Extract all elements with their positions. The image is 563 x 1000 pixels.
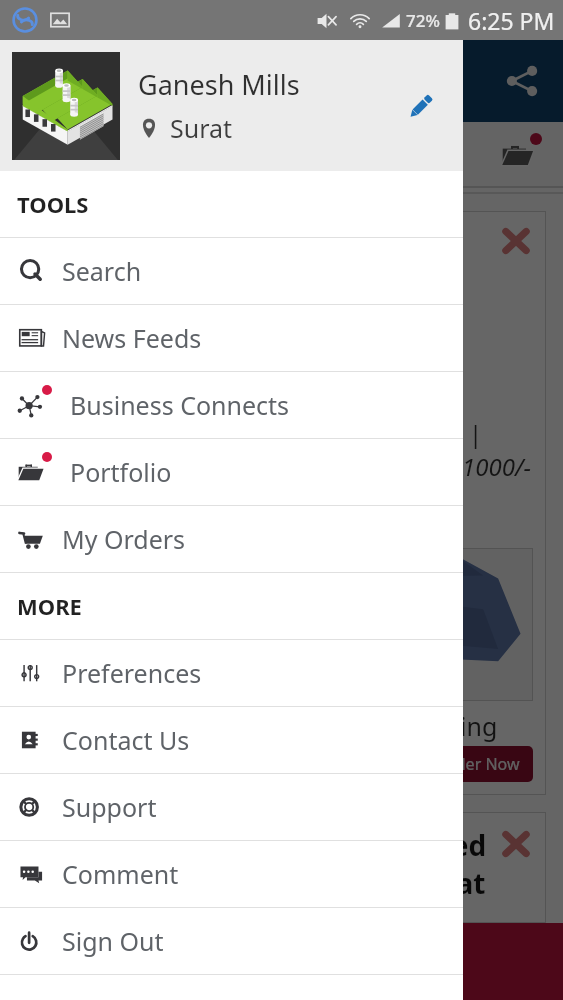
button[interactable]: Tab (141, 133, 185, 177)
staticText: Comment (62, 857, 179, 891)
button[interactable]: Support (0, 774, 463, 840)
staticText: Order Now (437, 753, 520, 775)
staticText: MORE (17, 591, 82, 621)
button[interactable]: Order Now (424, 746, 533, 782)
button[interactable]: Tab (260, 133, 304, 177)
staticText: Contact Us (62, 723, 190, 757)
staticText: Ganesh Mills (138, 66, 300, 103)
staticText: Portfolio (70, 455, 172, 489)
staticText: News Feeds (62, 321, 202, 355)
staticText: Your Order Has Been Completed (37, 826, 487, 864)
staticText: 72% (406, 9, 440, 32)
button[interactable]: Sign Out (0, 908, 463, 974)
button[interactable]: Close (500, 225, 532, 257)
button[interactable]: Business Connects (0, 372, 463, 438)
staticText: Surat (170, 111, 233, 145)
button[interactable]: Portfolio (0, 439, 463, 505)
button[interactable]: My Orders (0, 506, 463, 572)
button[interactable]: News Feeds (0, 305, 463, 371)
staticText: Minimum Quantity - 500 Mtrs | Price - 10… (37, 450, 531, 483)
staticText: Product Type - Cotton Fabrics 40x50 | (37, 417, 482, 450)
staticText: Cotton Fabric Premium Quality Shirting (37, 709, 498, 743)
button[interactable]: Tab (22, 133, 66, 177)
button[interactable]: Close (500, 828, 532, 860)
staticText: TOOLS (17, 189, 89, 219)
button[interactable]: Comment (0, 841, 463, 907)
button[interactable]: Tab (497, 133, 541, 177)
staticText: Support (62, 790, 157, 824)
button[interactable]: Search (0, 238, 463, 304)
button[interactable]: Contact Us (0, 707, 463, 773)
staticText: Business Connects (70, 388, 290, 422)
staticText: My Orders (62, 522, 186, 556)
button[interactable]: Preferences (0, 640, 463, 706)
staticText: Sign Out (62, 924, 164, 958)
staticText: 6:25 PM (468, 5, 555, 36)
button[interactable]: Tab (378, 133, 422, 177)
button[interactable]: Share (499, 58, 545, 104)
staticText: Search (62, 254, 142, 288)
staticText: Preferences (62, 656, 202, 690)
button[interactable]: Edit profile (399, 84, 443, 128)
staticText: By The Buyer Ganesh Mills Surat (37, 864, 486, 902)
